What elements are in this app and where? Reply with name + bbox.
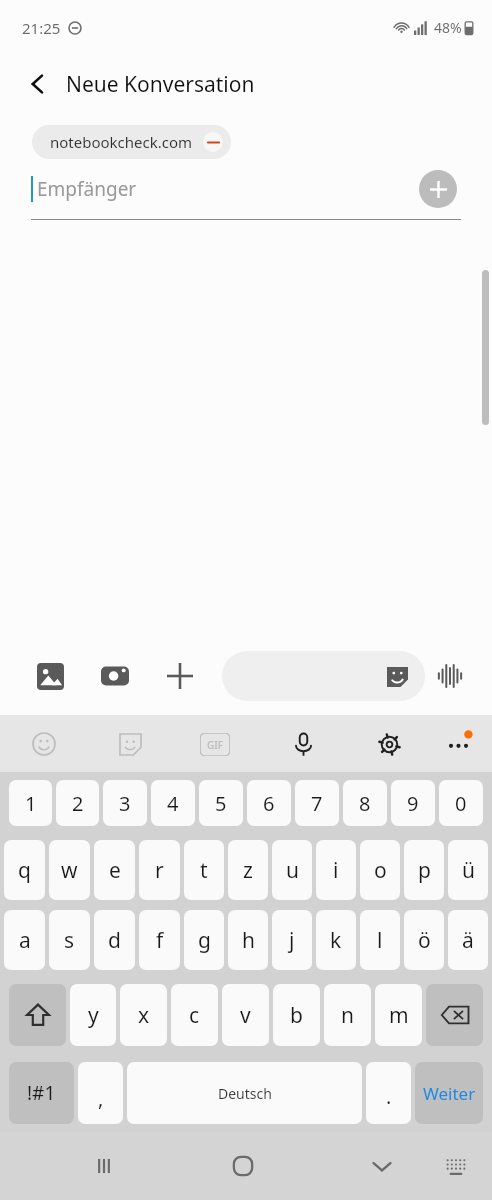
button[interactable]: r [139,840,180,900]
staticText: t [200,856,208,885]
staticText: , [98,1085,104,1112]
button[interactable]: f [139,910,180,970]
button[interactable]: o [360,840,400,900]
button[interactable]: Gallery [28,654,72,698]
staticText: r [155,856,164,885]
button[interactable]: Stickers [108,722,152,766]
staticText: 0 [455,790,467,817]
button[interactable]: notebookcheck.com [32,125,231,159]
button[interactable]: z [228,840,268,900]
button[interactable]: g [184,910,224,970]
button[interactable]: i [316,840,356,900]
button[interactable]: Switch keyboard [430,1140,482,1192]
staticText: 8 [359,790,371,817]
staticText: u [286,856,299,885]
button[interactable]: v [222,984,269,1046]
button[interactable]: l [360,910,400,970]
button[interactable]: 8 [343,780,387,826]
staticText: Deutsch [218,1084,272,1103]
staticText: ä [462,926,474,955]
staticText: ö [418,926,431,955]
staticText: y [88,1001,99,1030]
button[interactable]: Voice input [281,722,325,766]
button[interactable]: GIF [193,722,237,766]
button[interactable]: n [324,984,371,1046]
staticText: GIF [207,738,224,752]
button[interactable]: 7 [295,780,339,826]
button[interactable]: e [94,840,135,900]
button[interactable]: Emoji [22,722,66,766]
button[interactable]: b [273,984,320,1046]
button[interactable]: More options [158,654,202,698]
button[interactable]: 6 [247,780,291,826]
staticText: x [138,1001,150,1030]
button[interactable]: Voice [428,654,472,698]
button[interactable]: Shift [9,984,66,1046]
button[interactable]: Camera [93,654,137,698]
button[interactable]: 2 [56,780,99,826]
staticText: k [330,926,342,955]
staticText: 1 [25,790,37,817]
button[interactable]: Symbols [9,1062,74,1124]
staticText: l [377,926,383,955]
button[interactable]: h [228,910,268,970]
button[interactable]: 0 [439,780,483,826]
staticText: 9 [407,790,419,817]
staticText: q [18,856,31,885]
button[interactable]: w [49,840,90,900]
staticText: j [289,926,295,955]
button[interactable]: m [375,984,422,1046]
button[interactable]: j [272,910,312,970]
button[interactable]: More [438,722,482,766]
staticText: Weiter [423,1082,476,1105]
button[interactable]: Weiter [415,1062,483,1124]
button[interactable]: ü [448,840,488,900]
button[interactable]: p [404,840,444,900]
staticText: 4 [167,790,179,817]
button[interactable]: Recents [78,1140,130,1192]
button[interactable]: Backspace [426,984,483,1046]
button[interactable]: Keyboard settings [367,722,411,766]
staticText: h [242,926,255,955]
button[interactable]: , [78,1062,123,1124]
staticText: z [243,856,253,885]
button[interactable]: Home [217,1140,269,1192]
staticText: . [386,1083,392,1110]
button[interactable]: 1 [9,780,52,826]
button[interactable]: c [171,984,218,1046]
button[interactable]: 4 [151,780,195,826]
button[interactable]: x [120,984,167,1046]
staticText: notebookcheck.com [50,132,193,152]
button[interactable]: ö [404,910,444,970]
button[interactable]: d [94,910,135,970]
staticText: n [341,1001,354,1030]
staticText: ü [462,856,475,885]
button[interactable]: 3 [103,780,147,826]
button[interactable]: s [49,910,90,970]
staticText: o [374,856,387,885]
staticText: v [240,1001,251,1030]
button[interactable]: a [4,910,45,970]
button[interactable]: Space [127,1062,362,1124]
button[interactable]: Back [14,60,62,108]
staticText: 5 [215,790,227,817]
staticText: 6 [263,790,275,817]
staticText: g [198,926,211,955]
button[interactable]: Add recipient [419,170,457,208]
button[interactable]: k [316,910,356,970]
button[interactable]: q [4,840,45,900]
button[interactable]: Sticker [222,651,425,701]
staticText: e [109,856,121,885]
staticText: b [290,1001,303,1030]
button[interactable]: . [366,1062,411,1124]
button[interactable]: 9 [391,780,435,826]
button[interactable]: y [70,984,116,1046]
staticText: w [61,856,78,885]
staticText: 21:25 [22,18,61,38]
button[interactable]: t [184,840,224,900]
button[interactable]: 5 [199,780,243,826]
button[interactable]: u [272,840,312,900]
staticText: i [333,856,339,885]
button[interactable]: Hide keyboard [356,1140,408,1192]
button[interactable]: ä [448,910,488,970]
